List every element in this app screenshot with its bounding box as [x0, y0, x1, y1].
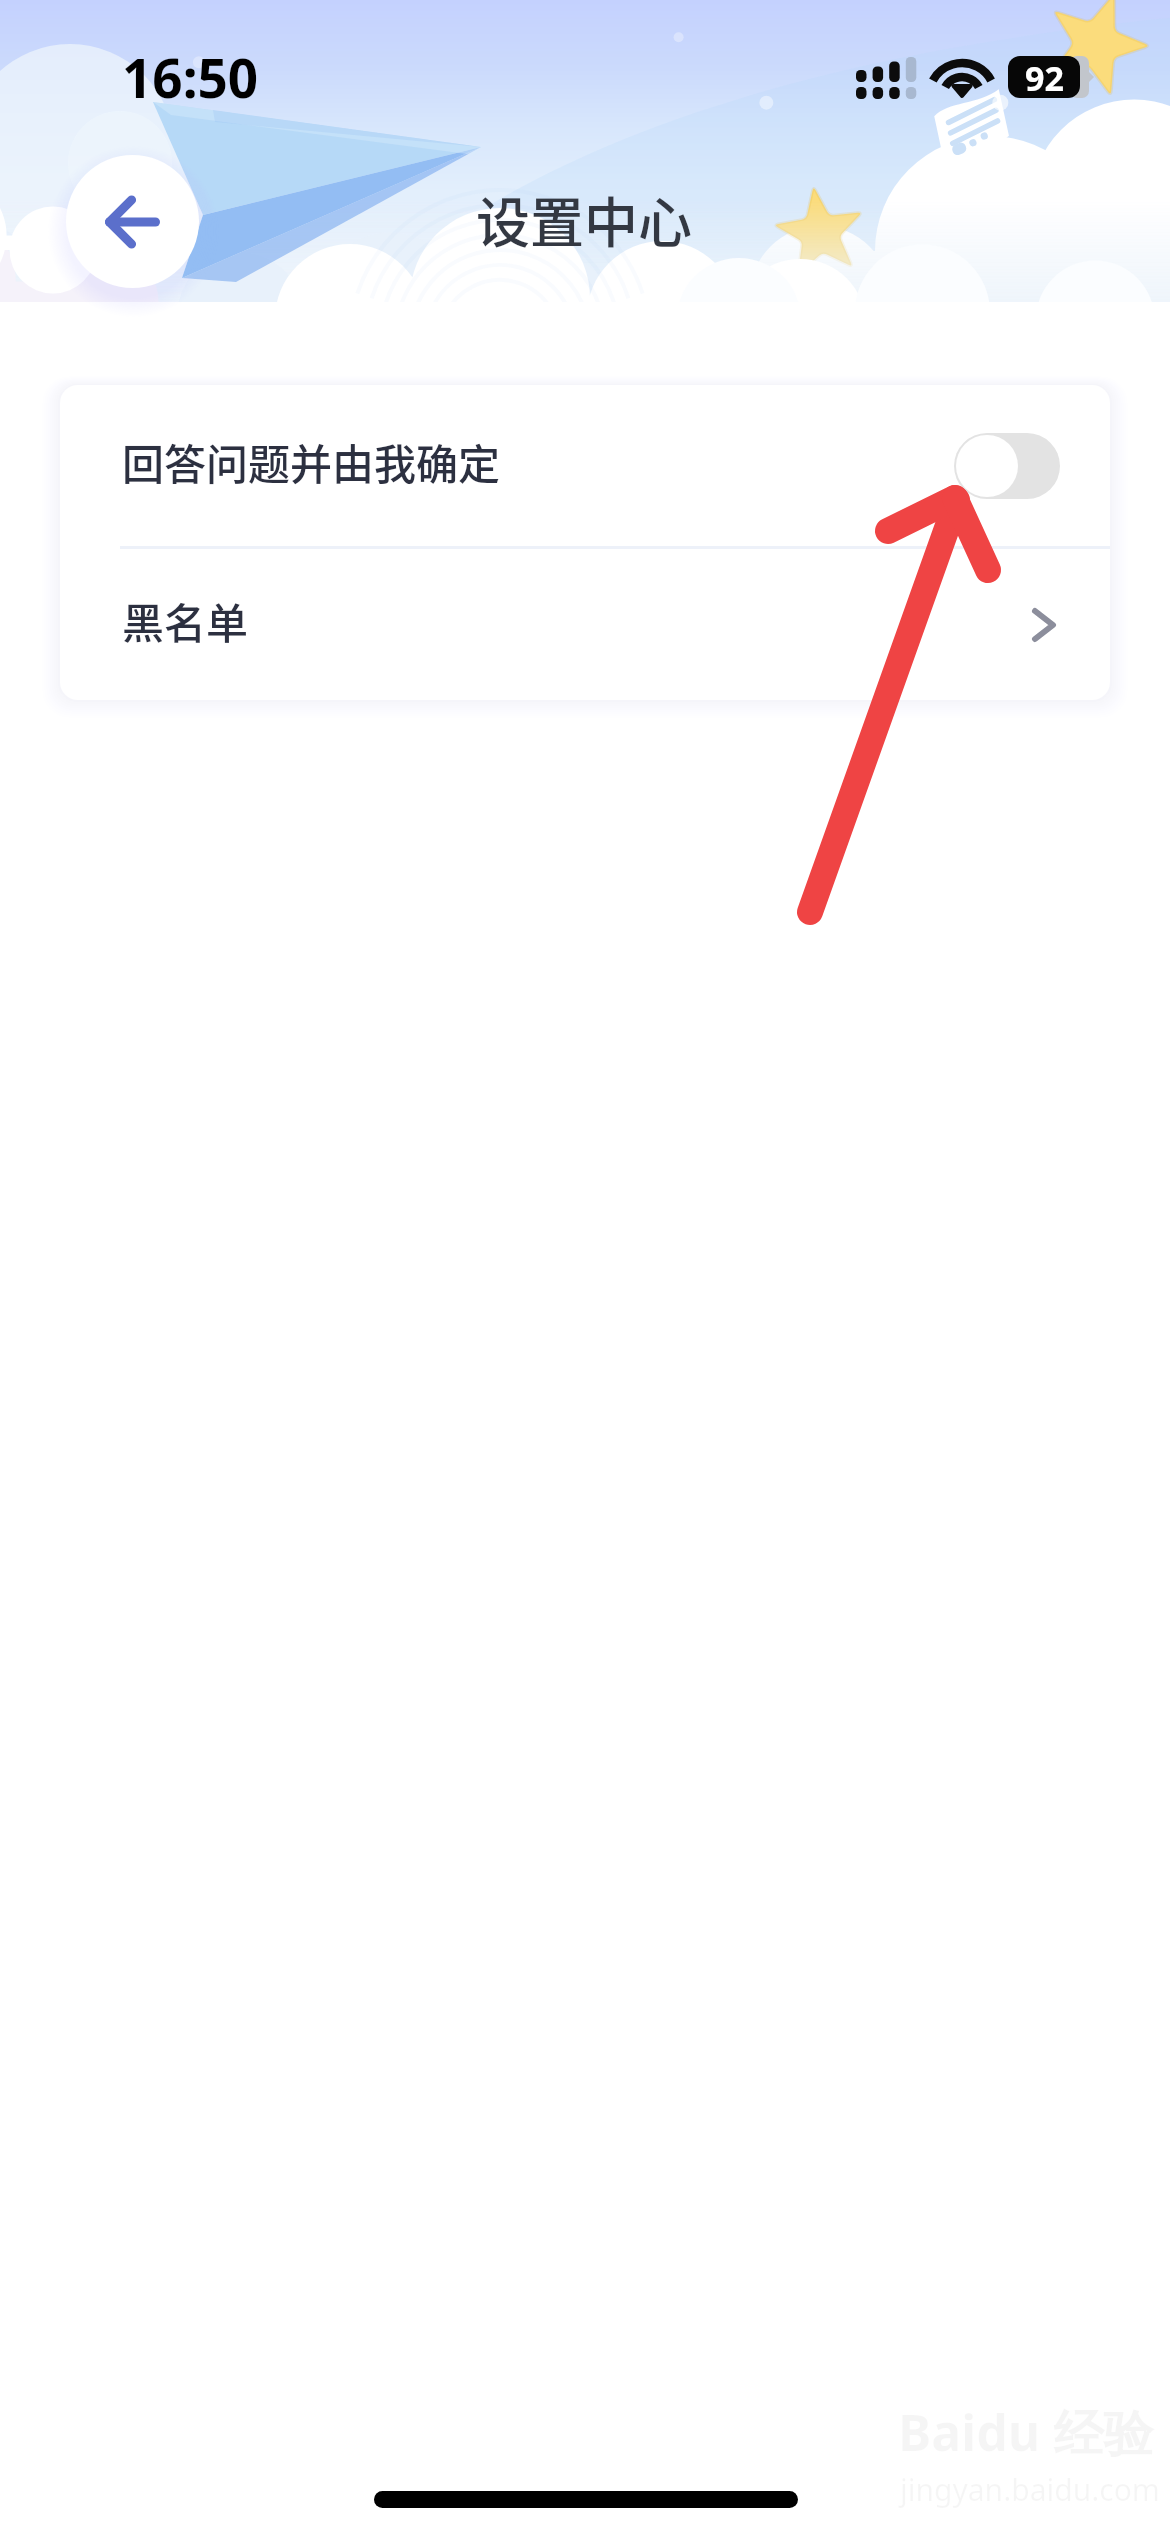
staticText: Baidu 经验 — [898, 2398, 1154, 2466]
button[interactable]: 黑名单 — [60, 549, 1110, 700]
button[interactable]: Back — [66, 155, 199, 288]
button[interactable]: 回答问题并由我确定 — [60, 385, 1110, 546]
staticText: jingyan.baidu.com — [900, 2469, 1160, 2510]
staticText: 92 — [1025, 56, 1064, 97]
button[interactable]: Toggle answer confirmation — [954, 433, 1060, 499]
staticText: 16:50 — [122, 41, 259, 113]
staticText: 设置中心 — [476, 180, 692, 258]
staticText: 回答问题并由我确定 — [122, 431, 501, 492]
staticText: 黑名单 — [122, 590, 249, 651]
